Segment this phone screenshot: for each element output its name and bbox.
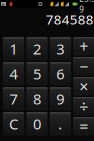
staticText: + bbox=[79, 36, 88, 57]
button[interactable]: 2 bbox=[26, 37, 48, 60]
staticText: × bbox=[79, 76, 88, 97]
staticText: 8 bbox=[33, 89, 41, 108]
staticText: − bbox=[79, 56, 88, 77]
button[interactable]: 7 bbox=[3, 87, 24, 110]
staticText: = bbox=[79, 116, 88, 137]
button[interactable]: ÷ bbox=[73, 97, 94, 115]
staticText: C bbox=[9, 114, 18, 133]
staticText: 4 bbox=[10, 64, 18, 83]
staticText: 9 bbox=[56, 89, 64, 108]
staticText: 5 bbox=[33, 64, 41, 83]
button[interactable]: 1 bbox=[3, 37, 24, 60]
button[interactable]: . bbox=[50, 112, 71, 135]
button[interactable]: 9 bbox=[50, 87, 71, 110]
staticText: 7 bbox=[10, 89, 18, 108]
staticText: . bbox=[58, 114, 62, 133]
button[interactable]: C bbox=[3, 112, 24, 135]
staticText: 0 bbox=[33, 114, 41, 133]
staticText: 2 bbox=[33, 39, 41, 58]
button[interactable]: = bbox=[73, 117, 94, 135]
button[interactable]: 4 bbox=[3, 62, 24, 85]
button[interactable]: 5 bbox=[26, 62, 48, 85]
button[interactable]: 8 bbox=[26, 87, 48, 110]
staticText: 6 bbox=[56, 64, 64, 83]
staticText: ÷ bbox=[79, 96, 88, 117]
button[interactable]: 3 bbox=[50, 37, 71, 60]
button[interactable]: − bbox=[73, 57, 94, 75]
button[interactable]: × bbox=[73, 77, 94, 95]
button[interactable]: 0 bbox=[26, 112, 48, 135]
button[interactable]: + bbox=[73, 37, 94, 55]
staticText: 3 bbox=[56, 39, 64, 58]
button[interactable]: 6 bbox=[50, 62, 71, 85]
staticText: 23:59 bbox=[79, 0, 94, 15]
staticText: 1 bbox=[10, 39, 18, 58]
staticText: 784588 bbox=[46, 10, 94, 28]
